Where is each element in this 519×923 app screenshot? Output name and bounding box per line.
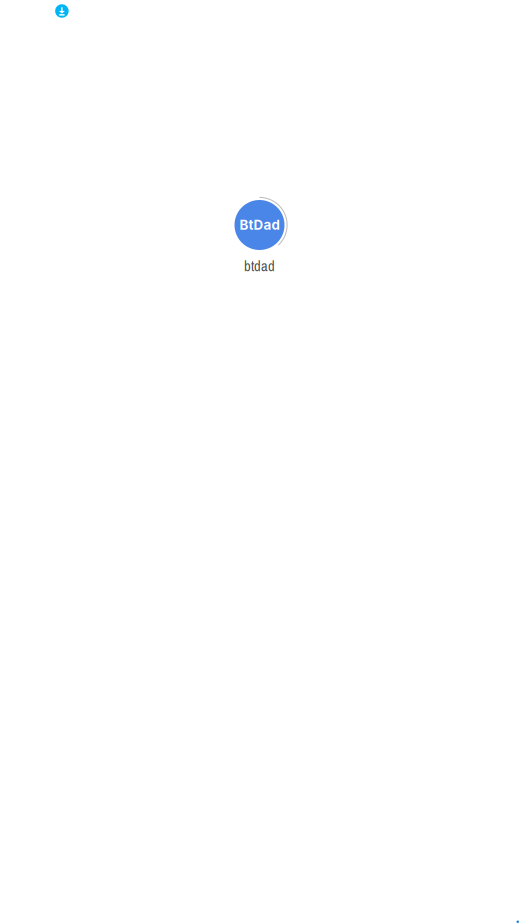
button[interactable]: Install	[55, 4, 69, 18]
button[interactable]: Chat	[516, 920, 519, 923]
staticText: BtDad	[239, 217, 279, 233]
staticText: btdad	[244, 256, 275, 276]
button[interactable]: BtDad	[199, 195, 319, 277]
